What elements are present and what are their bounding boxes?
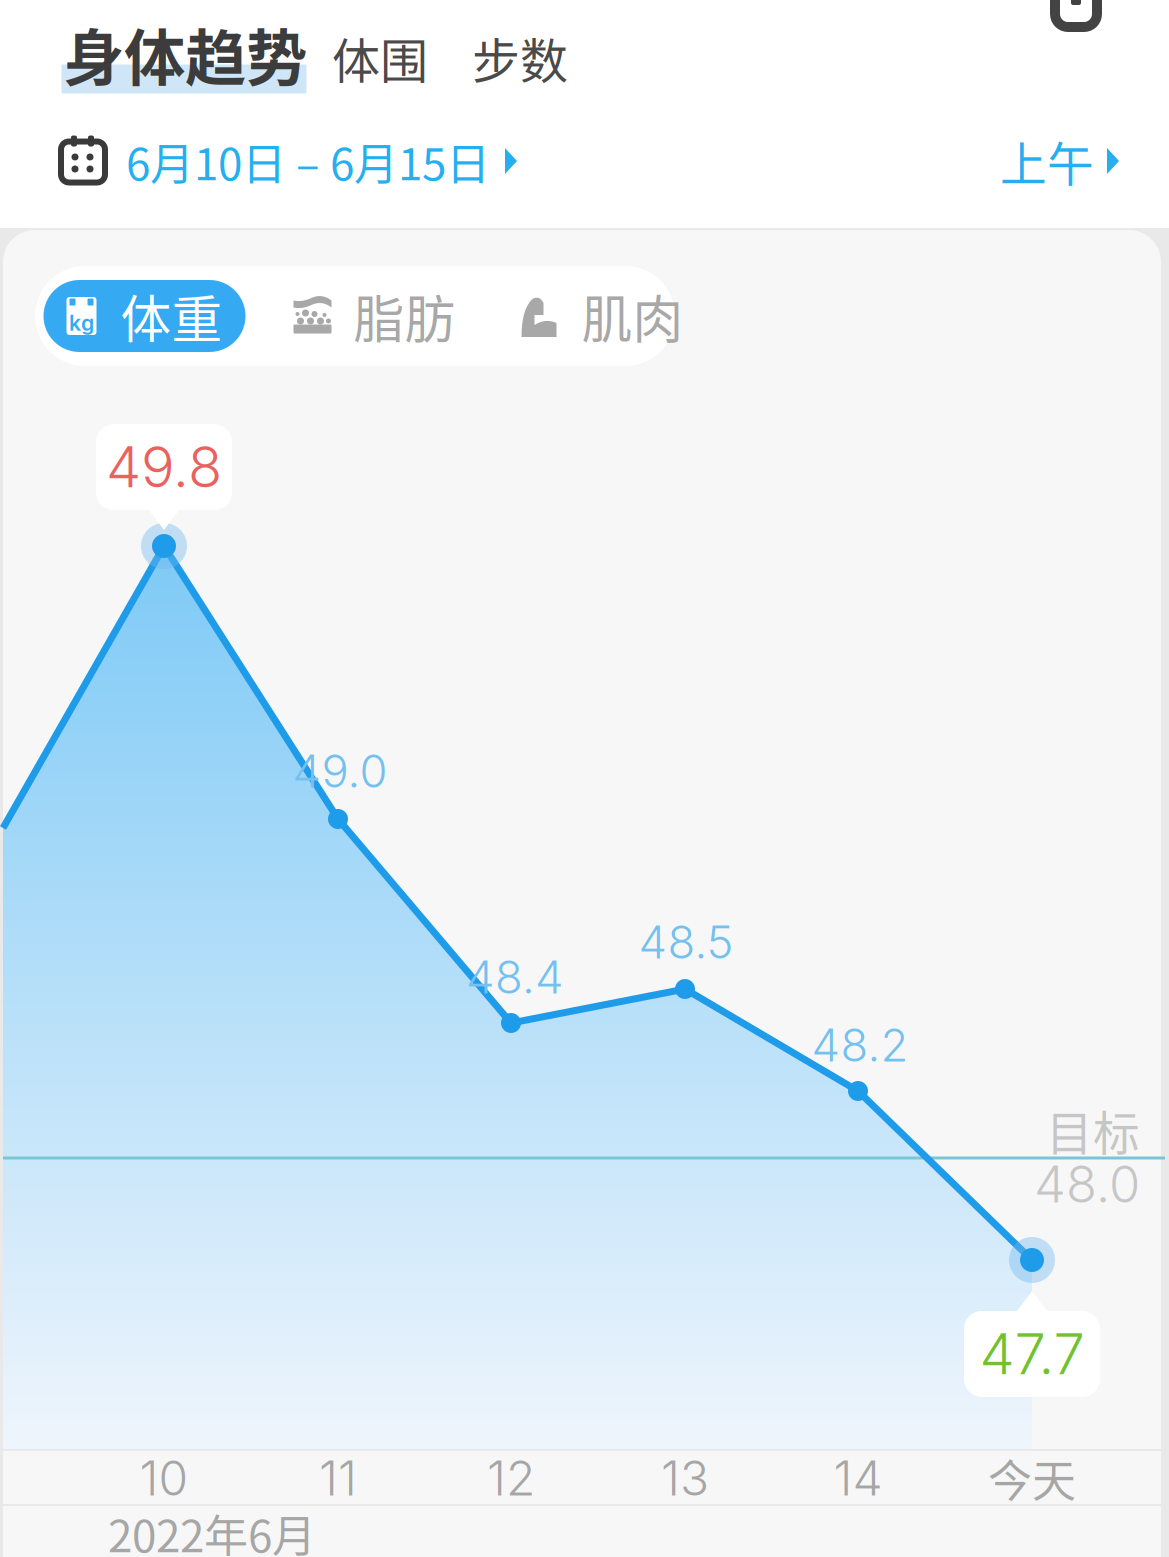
staticText: 11 <box>319 1449 357 1507</box>
staticText: 步数 <box>472 23 568 92</box>
staticText: kg <box>69 310 94 336</box>
staticText: 49.8 <box>106 433 222 501</box>
staticText: 12 <box>487 1449 535 1507</box>
button[interactable]: 体围 <box>310 23 450 98</box>
button[interactable]: kg <box>43 280 245 352</box>
staticText: 2022年6月 <box>108 1501 316 1557</box>
staticText: 目标 <box>1046 1096 1140 1164</box>
staticText: 6月10日 – 6月15日 <box>126 129 490 193</box>
staticText: 上午 <box>1000 127 1094 195</box>
staticText: 48.0 <box>1034 1153 1140 1215</box>
staticText: 脂肪 <box>353 279 455 353</box>
staticText: 14 <box>833 1449 882 1507</box>
button[interactable]: 肌肉 <box>519 280 683 352</box>
button[interactable]: 上午 <box>1000 123 1121 199</box>
staticText: 肌肉 <box>581 279 683 353</box>
button[interactable]: 步数 <box>450 23 590 98</box>
staticText: 身体趋势 <box>63 10 307 98</box>
staticText: 13 <box>661 1449 709 1507</box>
staticText: 今天 <box>988 1446 1076 1510</box>
staticText: 47.7 <box>979 1320 1084 1388</box>
button[interactable]: 脂肪 <box>293 280 455 352</box>
button[interactable]: 身体趋势 <box>60 10 310 98</box>
staticText: 48.2 <box>811 1018 908 1072</box>
button[interactable]: 6月10日 – 6月15日 <box>60 123 519 199</box>
staticText: 48.5 <box>638 915 733 969</box>
staticText: 10 <box>139 1449 188 1507</box>
staticText: 48.4 <box>466 950 564 1004</box>
staticText: 体围 <box>332 23 428 92</box>
staticText: 49.0 <box>292 744 387 798</box>
staticText: 体重 <box>120 279 222 353</box>
button[interactable]: Export <box>1050 0 1102 33</box>
